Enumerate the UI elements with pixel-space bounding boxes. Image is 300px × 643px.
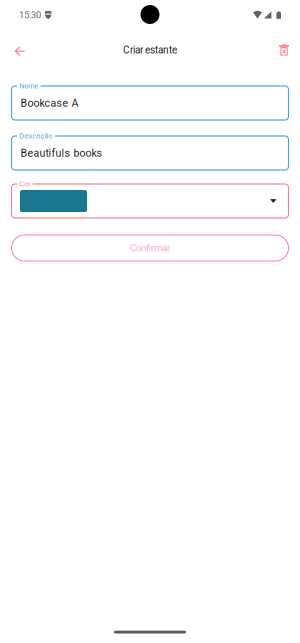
button[interactable]: Cor (11, 184, 288, 218)
button[interactable]: Delete (269, 35, 299, 65)
staticText: 15:30 (19, 9, 41, 20)
staticText: Confirmar (130, 242, 170, 254)
staticText: Cor (19, 180, 30, 188)
staticText: Bookcase A (20, 97, 78, 109)
button[interactable]: Beautifuls books (11, 136, 288, 170)
button[interactable]: Confirmar (11, 235, 288, 261)
staticText: Beautifuls books (20, 147, 102, 159)
staticText: Criar estante (123, 44, 177, 56)
button[interactable]: Back (5, 36, 35, 66)
button[interactable]: Bookcase A (11, 86, 288, 120)
staticText: Descrição (19, 132, 52, 140)
staticText: Nome (19, 82, 38, 90)
